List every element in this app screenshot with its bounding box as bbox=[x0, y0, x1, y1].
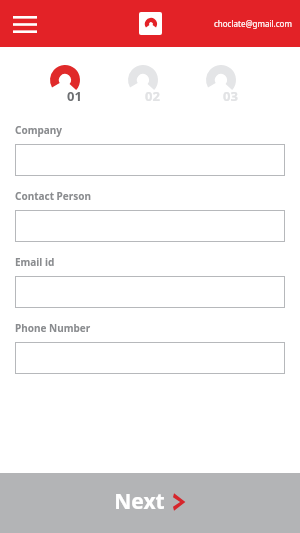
staticText: Contact Person bbox=[15, 189, 92, 203]
button[interactable]: 02 bbox=[126, 65, 174, 107]
staticText: Phone Number bbox=[15, 321, 91, 335]
button[interactable]: Company bbox=[15, 123, 285, 189]
button[interactable]: App logo bbox=[139, 12, 162, 35]
button[interactable]: Email id bbox=[15, 255, 285, 321]
button[interactable]: 01 bbox=[48, 65, 96, 107]
staticText: Next bbox=[114, 487, 165, 516]
staticText: Email id bbox=[15, 255, 55, 269]
button[interactable]: Open navigation menu bbox=[8, 7, 42, 41]
staticText: 02 bbox=[145, 87, 160, 105]
staticText: 03 bbox=[223, 87, 238, 105]
staticText: 01 bbox=[67, 87, 82, 105]
button[interactable]: Next bbox=[0, 473, 300, 533]
button[interactable]: Contact Person bbox=[15, 189, 285, 255]
button[interactable]: 03 bbox=[204, 65, 252, 107]
button[interactable]: Phone Number bbox=[15, 321, 285, 387]
button[interactable]: choclate@gmail.com bbox=[214, 18, 292, 29]
staticText: Company bbox=[15, 123, 62, 137]
